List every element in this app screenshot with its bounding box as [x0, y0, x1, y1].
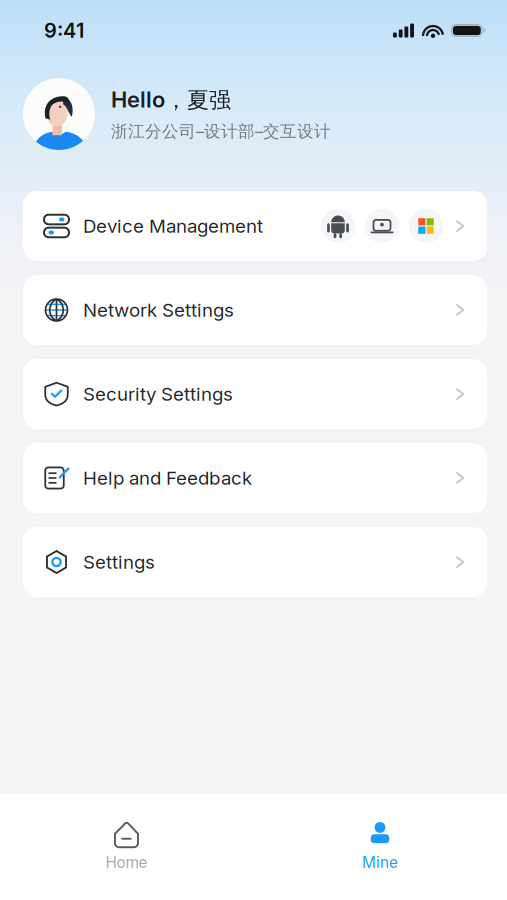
staticText: Home [105, 853, 147, 872]
staticText: Mine [362, 853, 398, 872]
button[interactable]: Settings [23, 527, 487, 597]
button[interactable]: Help and Feedback [23, 443, 487, 513]
button[interactable]: Security Settings [23, 359, 487, 429]
staticText: Hello，夏强 [111, 86, 231, 114]
staticText: Help and Feedback [83, 467, 252, 489]
staticText: Network Settings [83, 299, 234, 321]
staticText: 浙江分公司–设计部–交互设计 [111, 121, 331, 142]
staticText: 9:41 [44, 18, 84, 43]
button[interactable]: Network Settings [23, 275, 487, 345]
button[interactable]: Mine [253, 794, 507, 900]
staticText: Security Settings [83, 383, 233, 405]
staticText: Device Management [83, 215, 263, 237]
button[interactable]: Device Management [23, 191, 487, 261]
staticText: Settings [83, 551, 155, 573]
button[interactable]: Home [0, 794, 253, 900]
